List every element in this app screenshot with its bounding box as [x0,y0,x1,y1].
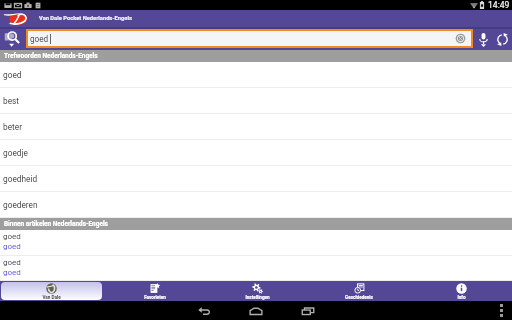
button[interactable]: Favorieten [104,282,205,300]
staticText: Favorieten [144,295,166,300]
button[interactable]: Info [411,282,511,300]
staticText: goedje [3,148,28,158]
button[interactable]: Geschiedenis [309,282,409,300]
staticText: Instellingen [245,295,270,300]
staticText: Van Dale [42,295,61,300]
button[interactable]: goederen [0,192,512,218]
button[interactable]: beter [0,114,512,140]
staticText: Trefwoorden Nederlands-Engels [4,52,98,60]
button[interactable]: goedheid [0,166,512,192]
button[interactable]: Choose dictionary [0,29,26,50]
button[interactable]: Clear text [455,33,466,44]
staticText: goederen [3,200,38,210]
staticText: goedheid [3,174,38,184]
staticText: Geschiedenis [345,295,373,300]
button[interactable]: goed [0,230,512,256]
staticText: goed [3,232,21,241]
staticText: beter [3,122,22,132]
button[interactable]: goedje [0,140,512,166]
staticText: Binnen artikelen Nederlands-Engels [4,220,108,228]
button[interactable]: best [0,88,512,114]
staticText: goed [30,34,49,44]
button[interactable]: Recent apps [300,303,316,319]
button[interactable]: Instellingen [207,282,307,300]
button[interactable]: goed [28,31,471,46]
staticText: goed [3,242,21,251]
button[interactable]: Swap languages [493,29,512,50]
staticText: goed [3,268,21,277]
button[interactable]: Van Dale [1,282,102,300]
staticText: Info [457,295,466,300]
button[interactable]: Back [196,303,212,319]
staticText: 14:49 [488,0,510,10]
button[interactable]: Voice search [473,29,493,50]
button[interactable]: Home [248,303,264,319]
button[interactable]: goed [0,62,512,88]
staticText: Van Dale Pocket Nederlands-Engels [39,15,132,22]
staticText: best [3,96,20,106]
button[interactable]: goed [0,256,512,281]
staticText: goed [3,70,22,80]
staticText: goed [3,258,21,267]
